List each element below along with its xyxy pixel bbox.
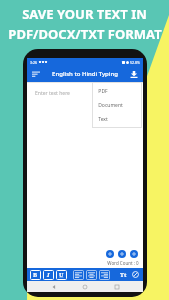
button[interactable]: Save: [130, 250, 138, 258]
button[interactable]: B: [30, 270, 41, 280]
staticText: I: [47, 271, 50, 279]
button[interactable]: Home: [80, 282, 90, 292]
staticText: PDF/DOCX/TXT FORMAT: [8, 25, 162, 43]
staticText: Tt: [120, 271, 127, 279]
button[interactable]: Share: [118, 250, 126, 258]
button[interactable]: Align 0: [73, 270, 84, 280]
button[interactable]: Align 2: [99, 270, 110, 280]
staticText: Word Count : 0: [107, 260, 139, 266]
button[interactable]: PDF: [92, 84, 142, 98]
staticText: 3:26: [30, 60, 37, 65]
button[interactable]: Menu: [31, 69, 41, 79]
button[interactable]: Recents: [112, 282, 122, 292]
button[interactable]: Text color: [131, 270, 140, 279]
staticText: English to Hindi Typing: [52, 70, 118, 78]
button[interactable]: Back: [49, 282, 59, 292]
button[interactable]: U: [56, 270, 67, 280]
staticText: B: [33, 271, 38, 279]
staticText: U: [59, 271, 64, 279]
staticText: PDF: [98, 88, 108, 95]
button[interactable]: Copy: [106, 250, 114, 258]
button[interactable]: Tt: [118, 270, 129, 280]
staticText: Document: [98, 102, 123, 109]
staticText: Enter text here: [35, 90, 70, 97]
button[interactable]: Align 1: [86, 270, 97, 280]
staticText: Text: [98, 116, 108, 123]
button[interactable]: Download: [129, 69, 139, 79]
staticText: SAVE YOUR TEXT IN: [22, 5, 147, 23]
button[interactable]: I: [43, 270, 54, 280]
button[interactable]: Text: [92, 112, 142, 126]
button[interactable]: Document: [92, 98, 142, 112]
staticText: 52.8%: [130, 60, 140, 65]
